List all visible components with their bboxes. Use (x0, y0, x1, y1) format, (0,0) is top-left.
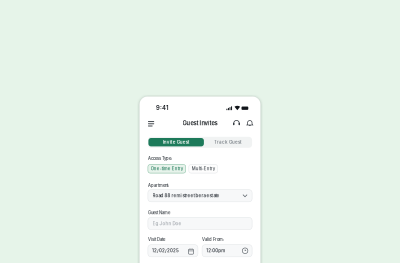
button[interactable]: Menu (146, 118, 156, 129)
staticText: Eg John Doe (152, 221, 181, 226)
staticText: Track Guest (214, 139, 242, 145)
button[interactable]: Invite Guest (148, 138, 204, 146)
staticText: Road 88 remi street bera estate (152, 193, 219, 198)
staticText: Guest Name (148, 210, 170, 215)
button[interactable]: Road 88 remi street bera estate (148, 190, 252, 202)
button[interactable]: Multi-Entry (189, 164, 218, 173)
button[interactable]: Track Guest (204, 138, 252, 146)
button[interactable]: 12/02/2025 (148, 245, 198, 257)
button[interactable]: Notifications (245, 118, 255, 128)
staticText: Access Type: (148, 156, 172, 161)
button[interactable]: Support (231, 118, 242, 128)
staticText: Valid From: (202, 237, 224, 242)
staticText: Apartment: (148, 183, 169, 188)
staticText: 12:00pm (206, 248, 225, 253)
staticText: Invite Guest (163, 139, 190, 145)
staticText: 12/02/2025 (152, 248, 179, 253)
button[interactable]: Eg John Doe (148, 217, 252, 230)
button[interactable]: 12:00pm (202, 245, 252, 257)
button[interactable]: One-time Entry (148, 164, 186, 173)
staticText: 9:41 (156, 104, 168, 111)
staticText: One-time Entry (151, 166, 183, 171)
staticText: Multi-Entry (192, 166, 215, 171)
staticText: Visit Date (148, 237, 165, 242)
staticText: Guest Invites (182, 120, 217, 127)
